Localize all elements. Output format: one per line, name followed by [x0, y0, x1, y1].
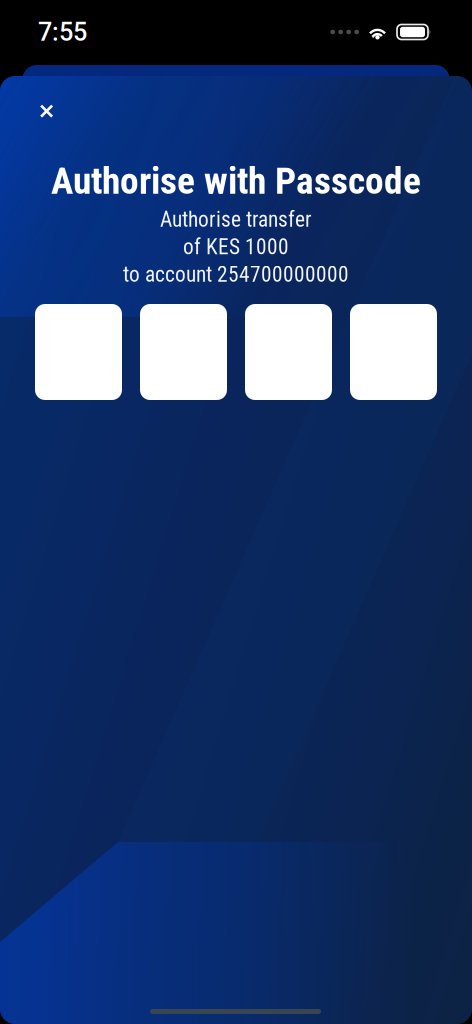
- staticText: Authorise transfer: [160, 207, 312, 232]
- staticText: to account 254700000000: [123, 262, 349, 287]
- staticText: Authorise with Passcode: [51, 159, 421, 203]
- staticText: of KES 1000: [183, 234, 289, 259]
- button[interactable]: Close: [25, 89, 69, 133]
- staticText: 7:55: [38, 17, 87, 47]
